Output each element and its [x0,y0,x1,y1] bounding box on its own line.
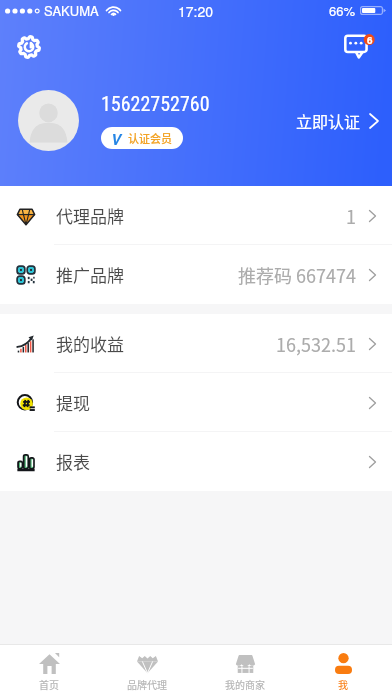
staticText: 16,532.51 [276,331,356,357]
staticText: 推广品牌 [56,262,124,287]
button[interactable]: 首页 [0,645,98,696]
staticText: 66% [329,1,356,20]
button[interactable]: 立即认证 [292,105,382,136]
button[interactable]: Settings [9,27,49,67]
staticText: 认证会员 [128,130,172,146]
staticText: 我 [338,677,348,691]
button[interactable]: Messages [337,26,381,68]
staticText: 报表 [56,449,90,474]
staticText: V [111,128,122,149]
staticText: 推荐码 667474 [238,262,356,288]
staticText: SAKUMA [44,1,99,20]
button[interactable]: 代理品牌 [0,186,392,245]
button[interactable]: V [101,127,183,149]
button[interactable]: 提现 [0,373,392,432]
staticText: 立即认证 [296,109,361,132]
staticText: 代理品牌 [56,203,124,228]
staticText: 6 [367,33,373,47]
staticText: 我的商家 [225,677,265,691]
button[interactable]: 报表 [0,432,392,491]
button[interactable]: 我的商家 [196,645,294,696]
staticText: 15622752760 [101,92,210,115]
staticText: 提现 [56,390,90,415]
button[interactable]: 我 [294,645,392,696]
button[interactable]: 推广品牌 [0,245,392,304]
staticText: 我的收益 [56,331,124,356]
staticText: 首页 [39,677,59,691]
button[interactable]: 品牌代理 [98,645,196,696]
staticText: 17:20 [178,1,214,21]
staticText: 品牌代理 [127,677,167,691]
staticText: 1 [346,203,356,229]
button[interactable]: 我的收益 [0,314,392,373]
